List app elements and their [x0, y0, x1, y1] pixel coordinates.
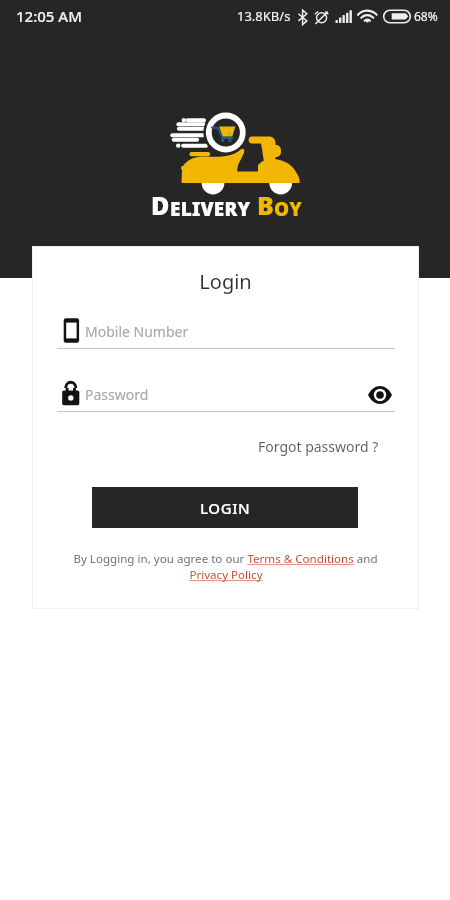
staticText: By Logging in, you agree to our Terms & …	[73, 551, 378, 567]
staticText: 12:05 AM	[16, 6, 82, 26]
staticText: Mobile Number	[85, 322, 189, 341]
button[interactable]: LOGIN	[92, 487, 358, 528]
staticText: Password	[85, 385, 149, 404]
staticText: Login	[32, 268, 419, 295]
staticText: 13.8KB/s	[237, 7, 291, 25]
button[interactable]: Forgot password ?	[32, 437, 379, 456]
button[interactable]: Show password	[367, 385, 393, 405]
staticText: 68%	[414, 8, 438, 24]
staticText: Privacy Policy	[189, 567, 263, 583]
staticText: B	[257, 188, 274, 222]
button[interactable]: Mobile Number	[32, 316, 419, 352]
staticText: ELIVERY	[170, 196, 251, 222]
staticText: Forgot password ?	[258, 437, 379, 456]
staticText: D	[151, 188, 170, 222]
staticText: OY	[274, 196, 302, 222]
staticText: LOGIN	[200, 498, 251, 518]
button[interactable]: Password	[32, 379, 419, 415]
button[interactable]: Privacy Policy	[189, 567, 263, 583]
